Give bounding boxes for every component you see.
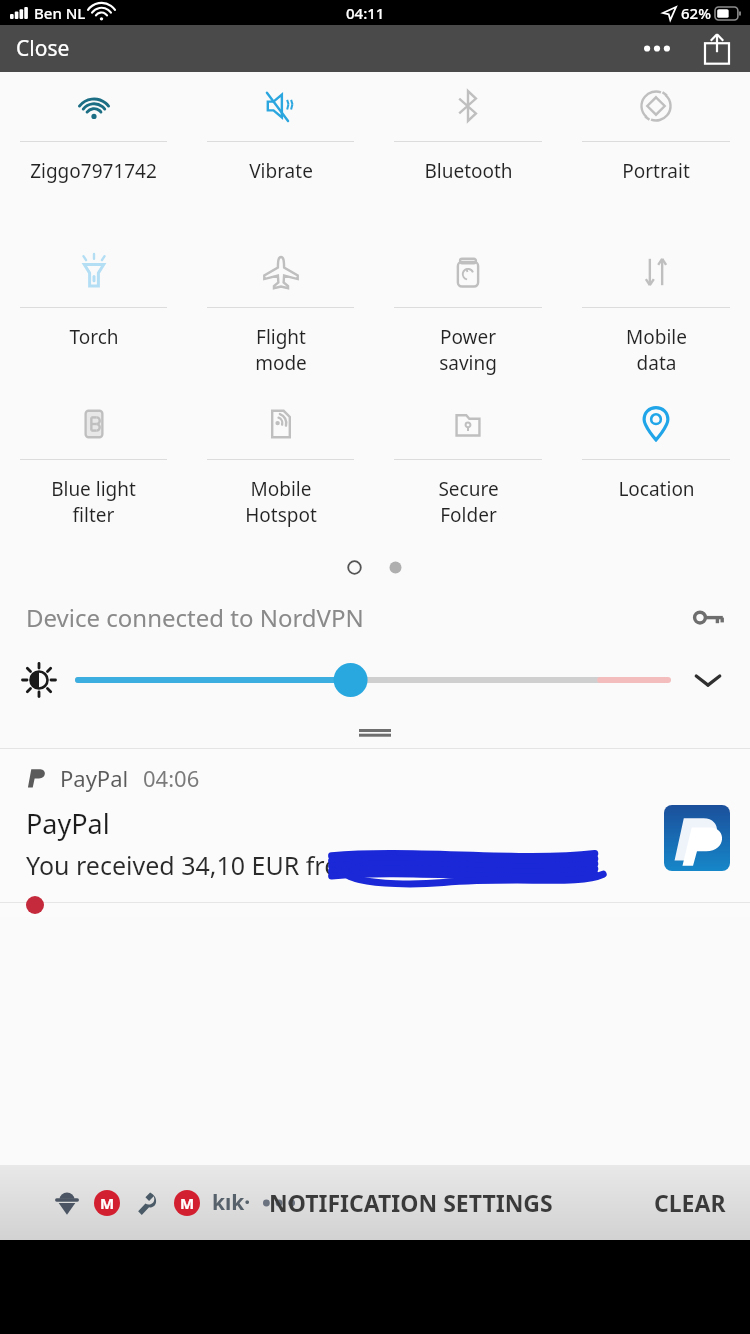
staticText: Secure Folder: [438, 476, 499, 528]
button[interactable]: Torch: [0, 250, 187, 350]
staticText: PayPal: [60, 763, 129, 793]
staticText: Close: [16, 34, 70, 63]
button[interactable]: Mobile data: [562, 250, 750, 376]
staticText: Location: [618, 476, 695, 502]
button[interactable]: Blue light filter: [0, 402, 187, 528]
staticText: NOTIFICATION SETTINGS: [269, 1187, 553, 1218]
staticText: You received 34,10 EUR from Dev: [26, 848, 414, 882]
staticText: CLEAR: [654, 1187, 726, 1218]
button[interactable]: Bluetooth: [374, 84, 562, 184]
staticText: 04:06: [143, 763, 200, 793]
button[interactable]: Mobile Hotspot: [187, 402, 374, 528]
other: Brightness: [22, 663, 56, 697]
staticText: Ziggo7971742: [30, 158, 157, 184]
staticText: Blue light filter: [51, 476, 136, 528]
button[interactable]: Device connected to NordVPN: [0, 595, 750, 640]
button[interactable]: PayPal: [0, 749, 750, 902]
button[interactable]: Expand brightness settings: [688, 660, 728, 700]
button[interactable]: Share: [698, 25, 750, 72]
staticText: M: [180, 1193, 195, 1213]
button[interactable]: Portrait: [562, 84, 750, 184]
staticText: Torch: [69, 324, 119, 350]
button[interactable]: More options: [630, 31, 684, 66]
staticText: M: [100, 1193, 115, 1213]
staticText: Device connected to NordVPN: [26, 601, 364, 634]
button[interactable]: Secure Folder: [374, 402, 562, 528]
other: VPN key: [694, 608, 724, 628]
staticText: kık·: [212, 1188, 251, 1217]
staticText: 62%: [681, 3, 711, 23]
staticText: Bluetooth: [424, 158, 513, 184]
staticText: Portrait: [622, 158, 690, 184]
button[interactable]: Close: [0, 26, 86, 71]
staticText: Mobile data: [626, 324, 687, 376]
button[interactable]: CLEAR: [630, 1177, 750, 1228]
staticText: Vibrate: [249, 158, 313, 184]
staticText: 04:11: [346, 3, 385, 23]
button[interactable]: Location: [562, 402, 750, 502]
button[interactable]: Power saving: [374, 250, 562, 376]
button[interactable]: Vibrate: [187, 84, 374, 184]
button[interactable]: Ziggo7971742: [0, 84, 187, 184]
staticText: PayPal: [26, 805, 110, 842]
staticText: Power saving: [439, 324, 497, 376]
staticText: Mobile Hotspot: [245, 476, 317, 528]
staticText: Ben NL: [34, 3, 86, 23]
button[interactable]: NOTIFICATION SETTINGS: [257, 1177, 565, 1228]
button[interactable]: [78, 665, 668, 695]
staticText: Flight mode: [255, 324, 307, 376]
button[interactable]: [0, 903, 750, 917]
button[interactable]: Flight mode: [187, 250, 374, 376]
